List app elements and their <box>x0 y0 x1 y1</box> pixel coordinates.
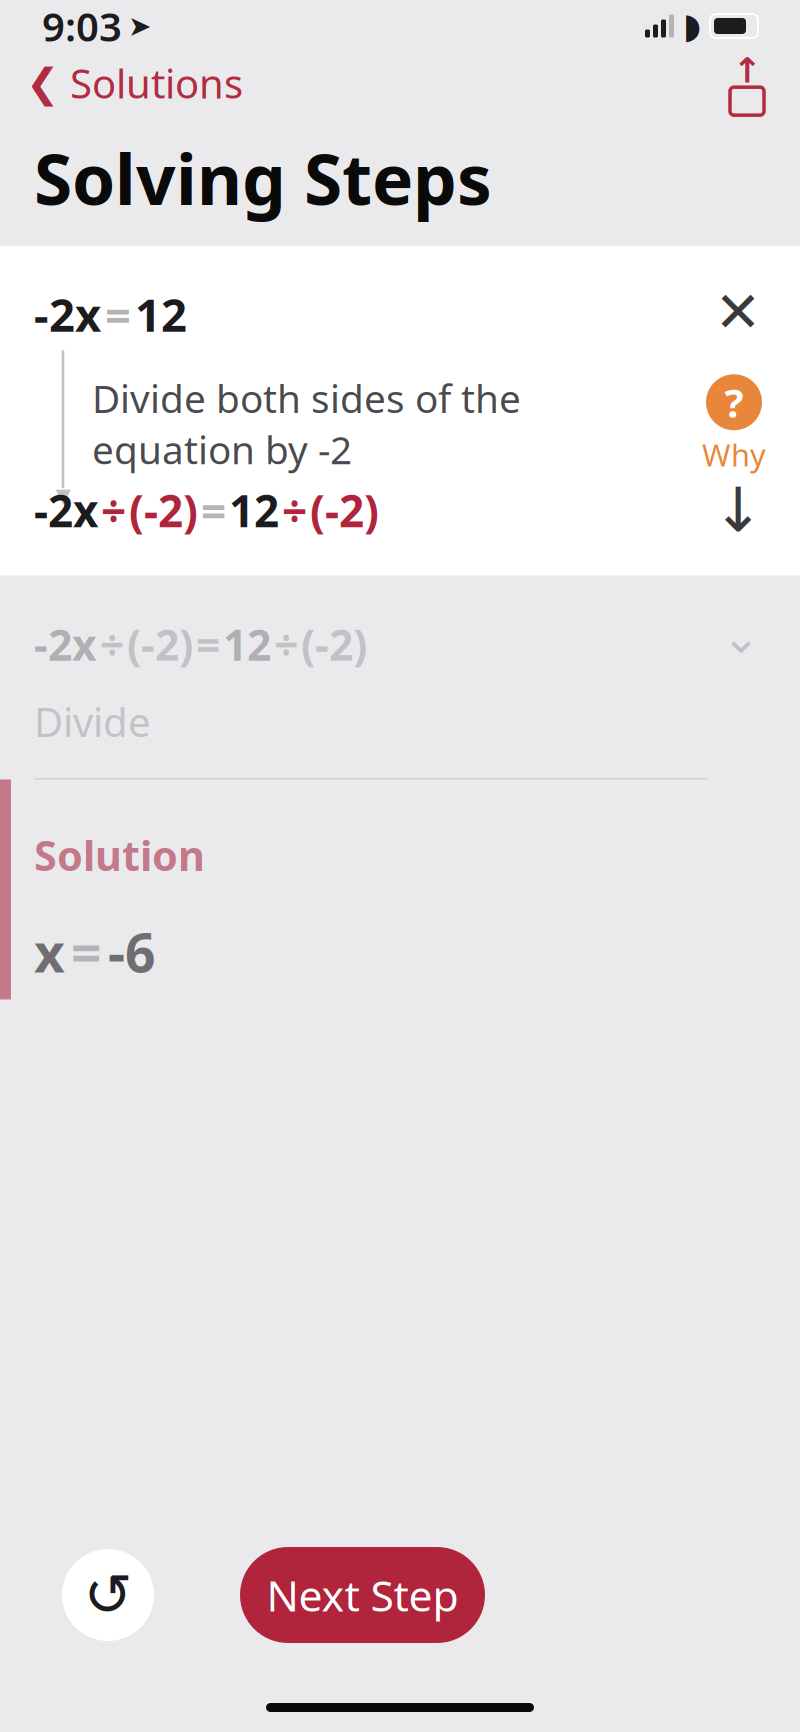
staticText: ↓ <box>712 475 763 545</box>
button[interactable]: Next <box>710 482 766 538</box>
staticText: ⌄ <box>722 611 760 663</box>
staticText: ▼ <box>55 484 70 507</box>
staticText: -2x <box>34 616 97 672</box>
staticText: = <box>105 284 131 344</box>
staticText: (-2) <box>310 481 379 539</box>
staticText: -6 <box>108 916 156 987</box>
button[interactable]: Next Step <box>240 1547 485 1643</box>
staticText: -2x <box>34 481 98 539</box>
staticText: 12 <box>229 481 279 539</box>
staticText: ÷ <box>274 616 298 672</box>
staticText: ❮ <box>26 60 60 106</box>
staticText: Solving Steps <box>34 132 492 224</box>
button[interactable]: ? <box>702 344 766 475</box>
staticText: ? <box>724 376 743 429</box>
staticText: Divide both sides of the equation by -2 <box>92 372 521 475</box>
staticText: = <box>201 481 226 539</box>
staticText: (-2) <box>129 481 198 539</box>
staticText: ✕ <box>714 280 761 344</box>
button[interactable]: -2x <box>0 575 800 778</box>
button[interactable]: Undo <box>62 1549 154 1641</box>
staticText: Solution <box>34 827 205 882</box>
staticText: = <box>71 916 102 987</box>
staticText: ➤ <box>128 10 151 42</box>
staticText: ↺ <box>83 1562 132 1628</box>
button[interactable]: Close <box>710 284 766 340</box>
staticText: 12 <box>135 284 187 344</box>
staticText: 12 <box>223 616 271 672</box>
staticText: x <box>34 916 65 987</box>
staticText: -2x <box>34 284 101 344</box>
staticText: Why <box>702 434 766 475</box>
staticText: Divide <box>34 695 151 748</box>
staticText: 9:03 <box>42 0 122 52</box>
staticText: ÷ <box>100 616 124 672</box>
staticText: ÷ <box>101 481 126 539</box>
staticText: ÷ <box>282 481 307 539</box>
staticText: (-2) <box>127 616 193 672</box>
staticText: = <box>196 616 220 672</box>
staticText: Solutions <box>70 56 243 109</box>
button[interactable]: ❮ <box>26 48 243 117</box>
staticText: (-2) <box>301 616 367 672</box>
staticText: Next Step <box>266 1567 458 1623</box>
button[interactable]: Share <box>720 56 774 110</box>
staticText: ↑ <box>732 51 761 90</box>
staticText: ◗ <box>683 6 701 46</box>
